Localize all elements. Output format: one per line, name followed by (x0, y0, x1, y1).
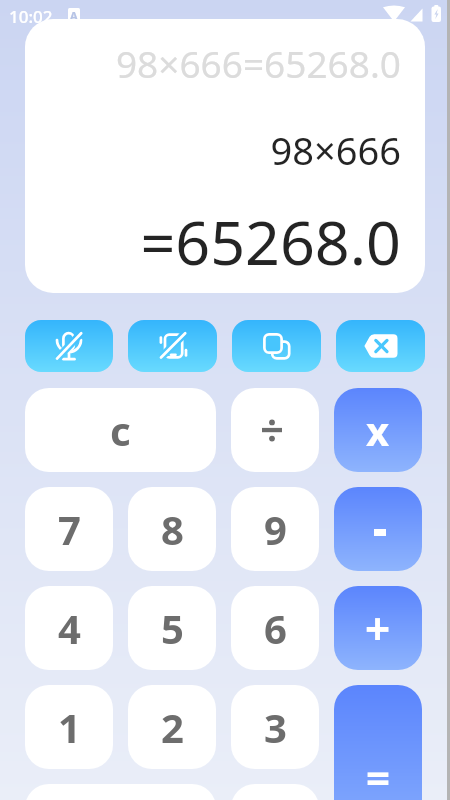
staticText: 6 (264, 601, 287, 655)
staticText: x (366, 403, 390, 457)
button[interactable]: Copy (232, 320, 321, 372)
button[interactable]: 8 (128, 487, 216, 571)
button[interactable]: 6 (231, 586, 319, 670)
staticText: 5 (161, 601, 184, 655)
staticText: 98×666 (25, 124, 401, 176)
staticText: 7 (58, 502, 81, 556)
staticText: 1 (58, 700, 81, 754)
button[interactable]: Multiply (334, 388, 422, 472)
button[interactable]: 9 (231, 487, 319, 571)
button[interactable]: Minus (334, 487, 422, 571)
button[interactable]: 1 (25, 685, 113, 769)
button[interactable] (231, 388, 319, 472)
staticText: 3 (264, 700, 287, 754)
staticText: 4 (58, 601, 81, 655)
button[interactable]: 7 (25, 487, 113, 571)
staticText: 98×666=65268.0 (25, 38, 401, 88)
staticText: 10:02 (9, 5, 53, 27)
button[interactable]: Plus (334, 586, 422, 670)
button[interactable]: 4 (25, 586, 113, 670)
button[interactable]: 3 (231, 685, 319, 769)
button[interactable]: 5 (128, 586, 216, 670)
button[interactable]: c (25, 388, 216, 472)
staticText: 9 (264, 502, 287, 556)
staticText: 2 (161, 700, 184, 754)
staticText: = (366, 748, 391, 800)
button[interactable]: Equals (334, 685, 422, 800)
button[interactable]: 0 (25, 784, 216, 800)
button[interactable]: Backspace (336, 320, 425, 372)
staticText: 8 (161, 502, 184, 556)
staticText: A (70, 8, 78, 20)
button[interactable]: Vibrate off (128, 320, 217, 372)
staticText: =65268.0 (25, 200, 401, 283)
button[interactable]: . (231, 784, 319, 800)
button[interactable]: 2 (128, 685, 216, 769)
staticText: + (365, 598, 391, 658)
staticText: c (110, 403, 131, 457)
button[interactable]: Mute microphone (25, 320, 113, 372)
